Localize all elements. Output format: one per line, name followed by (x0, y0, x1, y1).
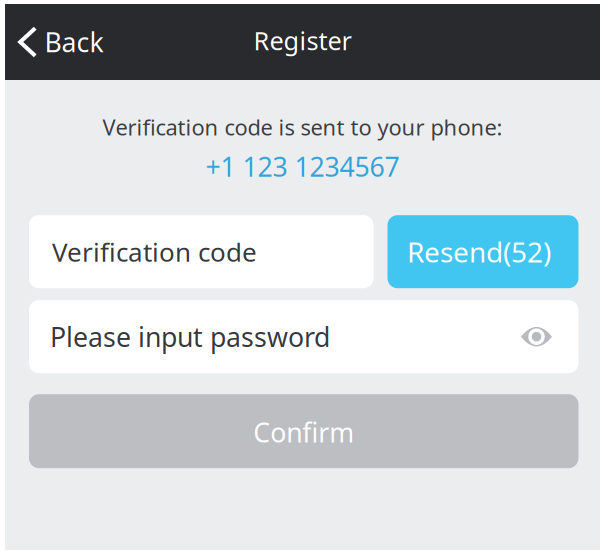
staticText: +1 123 1234567 (205, 149, 399, 184)
button[interactable]: Resend(52) (387, 215, 578, 288)
button[interactable]: Back (5, 10, 111, 74)
staticText: Register (253, 24, 351, 57)
button[interactable]: Confirm (29, 394, 578, 468)
staticText: Back (44, 24, 103, 60)
button[interactable]: Please input password (29, 300, 578, 373)
staticText: Resend(52) (407, 233, 551, 270)
staticText: Confirm (253, 414, 354, 450)
button[interactable]: Verification code (29, 215, 373, 288)
staticText: Please input password (50, 319, 330, 354)
button[interactable]: Show password (510, 314, 562, 360)
staticText: Verification code (52, 234, 257, 269)
staticText: Verification code is sent to your phone: (102, 112, 502, 142)
